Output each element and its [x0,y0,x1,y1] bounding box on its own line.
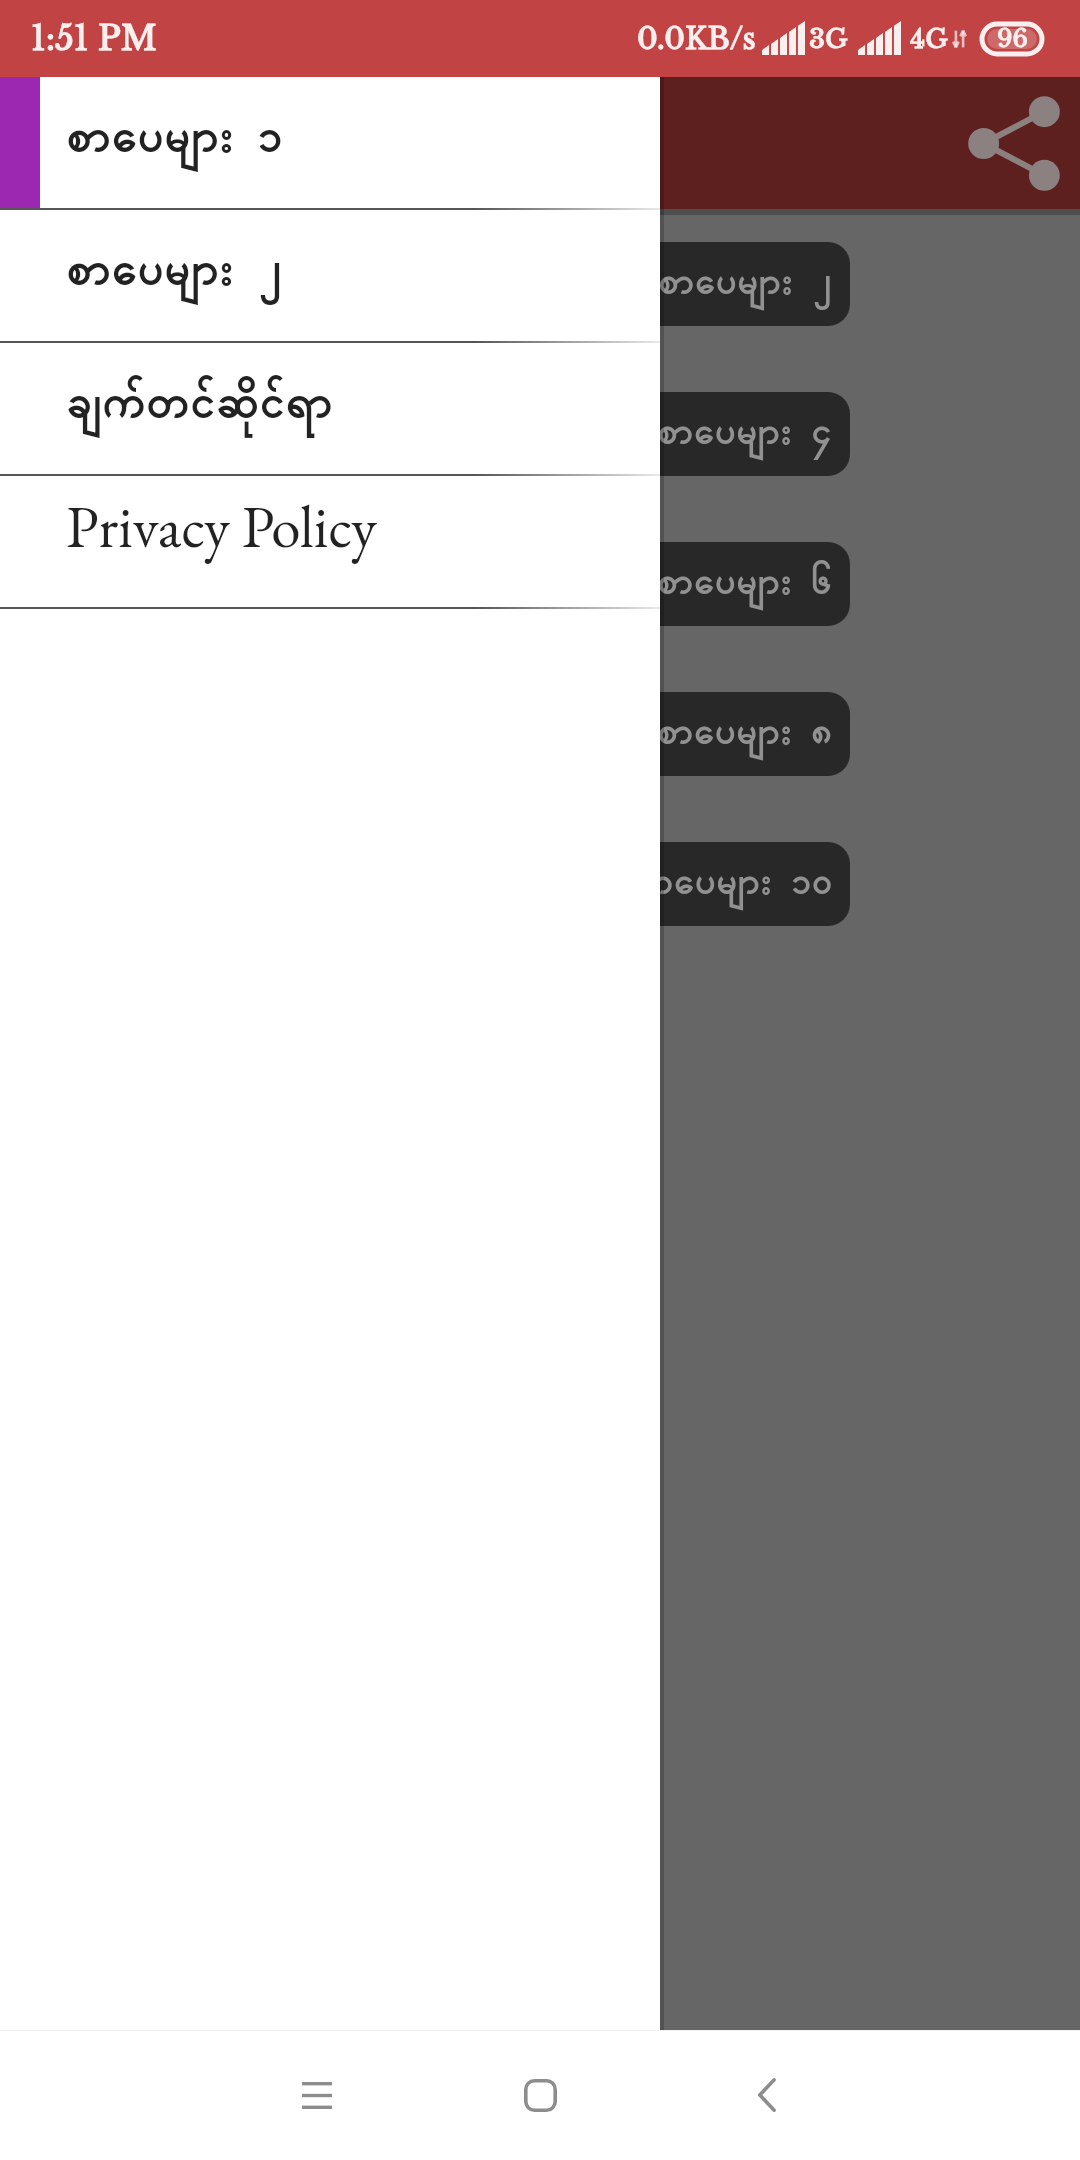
staticText: စာပေများ ၂ [658,257,833,312]
staticText: 1:51 PM [31,18,157,59]
staticText: စာပေများ ၄ [657,407,833,462]
button[interactable]: စာပေများ ၂ [230,242,850,326]
staticText: ချက်တင်ဆိုင်ရာ [66,372,334,440]
staticText: စာပေများ ၁ [66,106,283,174]
button[interactable]: စာပေများ ၈ [230,692,850,776]
staticText: 96 [997,24,1028,54]
staticText: 3G [809,23,848,55]
staticText: စာပေများ ၁၀ [637,857,833,912]
button[interactable]: စာပေများ ၂ [0,210,660,343]
button[interactable]: စာပေများ ၁ [0,77,660,210]
button[interactable]: Recent apps [257,2035,377,2155]
staticText: 4G [910,23,948,55]
button[interactable]: Back [707,2035,827,2155]
staticText: စာပေများ ၆ [657,557,833,612]
staticText: Privacy Policy [66,488,377,565]
button[interactable]: စာပေများ ၄ [230,392,850,476]
button[interactable]: Share [955,84,1073,202]
button[interactable]: စာပေများ ၁၀ [230,842,850,926]
staticText: စာပေများ ၂ [66,239,283,307]
staticText: 0.0KB/s [637,21,756,57]
staticText: စာပေများ ၈ [657,707,833,762]
button[interactable]: ချက်တင်ဆိုင်ရာ [0,343,660,476]
button[interactable]: Home [480,2035,600,2155]
button[interactable]: Privacy Policy [0,476,660,609]
button[interactable]: စာပေများ ၆ [230,542,850,626]
